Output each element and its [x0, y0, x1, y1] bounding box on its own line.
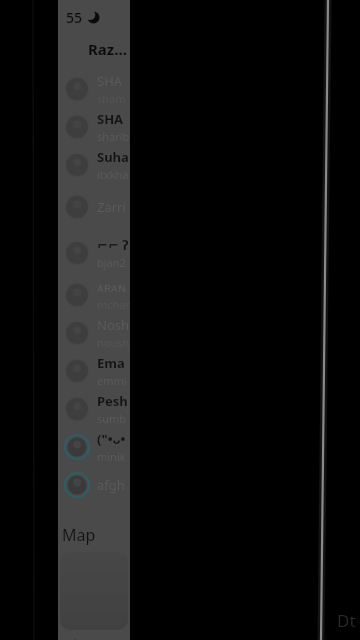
- button[interactable]: Zarrinn…: [58, 184, 130, 230]
- button[interactable]: ⌐⌐ ʔ ★: [58, 230, 130, 276]
- staticText: Dt: [337, 609, 356, 632]
- button[interactable]: Peshoo…: [58, 390, 130, 428]
- staticText: ᴀʀᴀɴᴅᴀ: [97, 278, 130, 296]
- button[interactable]: Raz…: [58, 34, 130, 64]
- staticText: afghani…: [97, 476, 130, 494]
- staticText: Eman: [97, 354, 130, 372]
- staticText: Noshe…: [97, 316, 130, 334]
- staticText: sumbail…: [97, 411, 130, 426]
- staticText: 55: [66, 8, 83, 27]
- staticText: ⌐⌐ ʔ ★: [97, 236, 130, 254]
- button[interactable]: Suhana…: [58, 146, 130, 184]
- button[interactable]: Map: [58, 518, 130, 552]
- button[interactable]: ᴀʀᴀɴᴅᴀ: [58, 276, 130, 314]
- staticText: Suhana…: [97, 148, 130, 166]
- button[interactable]: SHARii…: [58, 108, 130, 146]
- staticText: sharibaj…: [97, 129, 130, 144]
- staticText: bjan202…: [97, 255, 130, 270]
- staticText: Zarrinn…: [97, 198, 130, 216]
- staticText: SHARiiF…: [97, 72, 130, 90]
- staticText: minikha…: [97, 449, 130, 464]
- staticText: Raz…: [88, 39, 128, 59]
- button[interactable]: Noshe…: [58, 314, 130, 352]
- staticText: itxkhania…: [97, 167, 130, 182]
- staticText: Map: [62, 524, 96, 546]
- button[interactable]: afghani…: [58, 466, 130, 504]
- button[interactable]: ("•ᴗ•": [58, 428, 130, 466]
- staticText: ("•ᴗ•": [97, 430, 130, 448]
- staticText: Peshoo…: [97, 392, 130, 410]
- button[interactable]: SHARiiF…: [58, 70, 130, 108]
- button[interactable]: Eman: [58, 352, 130, 390]
- staticText: emmi95…: [97, 373, 130, 388]
- staticText: SHARii…: [97, 110, 130, 128]
